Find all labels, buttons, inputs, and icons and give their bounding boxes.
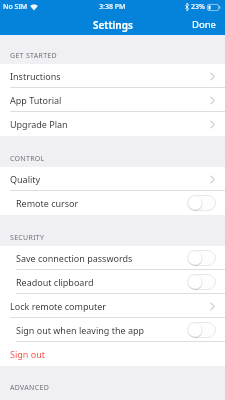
button[interactable]: Toggle bbox=[187, 322, 216, 338]
staticText: Done bbox=[192, 18, 216, 31]
button[interactable]: Toggle bbox=[187, 195, 216, 211]
staticText: Lock remote computer bbox=[10, 300, 107, 312]
button[interactable]: App Tutorial bbox=[0, 88, 225, 112]
button[interactable]: Instructions bbox=[0, 64, 225, 88]
staticText: Readout clipboard bbox=[16, 276, 94, 288]
staticText: Settings bbox=[93, 18, 133, 32]
staticText: Upgrade Plan bbox=[10, 118, 68, 130]
staticText: CONTROL bbox=[10, 154, 45, 164]
button[interactable]: Readout clipboard bbox=[0, 270, 225, 294]
staticText: Quality bbox=[10, 173, 41, 185]
button[interactable]: Sign out bbox=[0, 342, 225, 366]
staticText: 23% bbox=[191, 2, 205, 12]
staticText: ADVANCED bbox=[10, 383, 50, 393]
button[interactable]: Remote cursor bbox=[0, 191, 225, 215]
button[interactable]: Save connection passwords bbox=[0, 246, 225, 270]
button[interactable]: Toggle bbox=[187, 274, 216, 290]
staticText: App Tutorial bbox=[10, 94, 62, 106]
button[interactable]: Done bbox=[182, 14, 225, 35]
button[interactable]: Sign out when leaving the app bbox=[0, 318, 225, 342]
staticText: Sign out bbox=[10, 348, 45, 360]
button[interactable]: Toggle bbox=[187, 250, 216, 266]
button[interactable]: Lock remote computer bbox=[0, 294, 225, 318]
button[interactable]: Quality bbox=[0, 167, 225, 191]
button[interactable]: Upgrade Plan bbox=[0, 112, 225, 136]
staticText: Instructions bbox=[10, 70, 61, 82]
staticText: GET STARTED bbox=[10, 51, 57, 61]
staticText: SECURITY bbox=[10, 233, 45, 243]
staticText: Sign out when leaving the app bbox=[16, 324, 145, 336]
staticText: Remote cursor bbox=[16, 197, 79, 209]
staticText: 3:38 PM bbox=[99, 2, 126, 12]
staticText: No SIM bbox=[3, 2, 28, 12]
staticText: Save connection passwords bbox=[16, 252, 133, 264]
